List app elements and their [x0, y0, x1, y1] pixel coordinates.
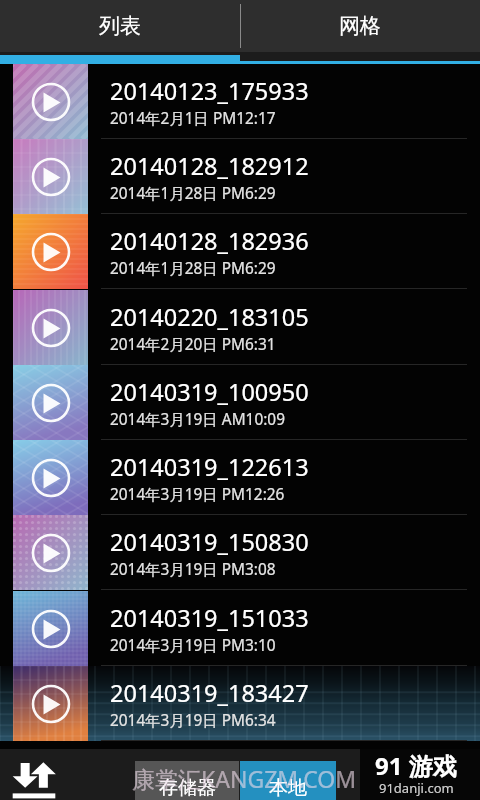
staticText: 存储器 [159, 776, 216, 800]
staticText: 2014年2月20日 PM6:31 [110, 334, 276, 355]
staticText: 20140128_182912 [110, 150, 309, 182]
button[interactable]: 20140319_100950 [0, 365, 480, 440]
staticText: 本地 [269, 776, 307, 800]
staticText: 2014年1月28日 PM6:29 [110, 183, 276, 204]
staticText: 91 游戏 [375, 749, 457, 782]
staticText: 91danji.com [379, 779, 454, 797]
button[interactable]: 20140319_122613 [0, 440, 480, 515]
button[interactable]: 20140319_150830 [0, 515, 480, 590]
staticText: 列表 [99, 13, 141, 39]
staticText: 20140123_175933 [110, 75, 309, 107]
staticText: 20140128_182936 [110, 225, 309, 257]
staticText: 2014年3月19日 PM3:08 [110, 559, 276, 580]
staticText: 20140319_183427 [110, 677, 309, 709]
button[interactable]: 20140220_183105 [0, 290, 480, 365]
button[interactable]: 列表 [0, 0, 240, 52]
button[interactable]: 存储器 [135, 761, 239, 800]
staticText: 2014年3月19日 PM6:34 [110, 710, 276, 731]
staticText: 20140319_100950 [110, 376, 309, 408]
staticText: 2014年3月19日 PM12:26 [110, 484, 285, 505]
button[interactable]: 20140319_151033 [0, 591, 480, 666]
staticText: 康掌汇KANGZM.COM [132, 763, 357, 794]
staticText: 20140220_183105 [110, 301, 309, 333]
staticText: 20140319_150830 [110, 526, 309, 558]
staticText: 2014年2月1日 PM12:17 [110, 108, 276, 129]
button[interactable]: Sort order [8, 759, 60, 799]
staticText: 2014年3月19日 AM10:09 [110, 409, 285, 430]
staticText: 网格 [339, 13, 381, 39]
button[interactable]: 20140319_183427 [0, 666, 480, 741]
button[interactable]: 20140128_182912 [0, 139, 480, 214]
staticText: 2014年1月28日 PM6:29 [110, 258, 276, 279]
staticText: 2014年3月19日 PM3:10 [110, 635, 276, 656]
button[interactable]: 本地 [240, 761, 336, 800]
button[interactable]: 20140128_182936 [0, 214, 480, 289]
button[interactable]: 网格 [240, 0, 480, 52]
staticText: 20140319_122613 [110, 451, 309, 483]
button[interactable]: 20140123_175933 [0, 64, 480, 139]
staticText: 20140319_151033 [110, 602, 309, 634]
